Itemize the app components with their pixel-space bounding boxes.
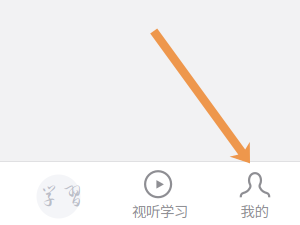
staticText: 我的 <box>240 200 268 221</box>
button[interactable]: 视听学习 <box>110 161 206 223</box>
button[interactable]: 我的 <box>206 161 300 223</box>
staticText: 视听学习 <box>132 200 188 221</box>
button[interactable]: 学习 <box>10 165 106 225</box>
staticText: 学习 <box>37 184 83 206</box>
